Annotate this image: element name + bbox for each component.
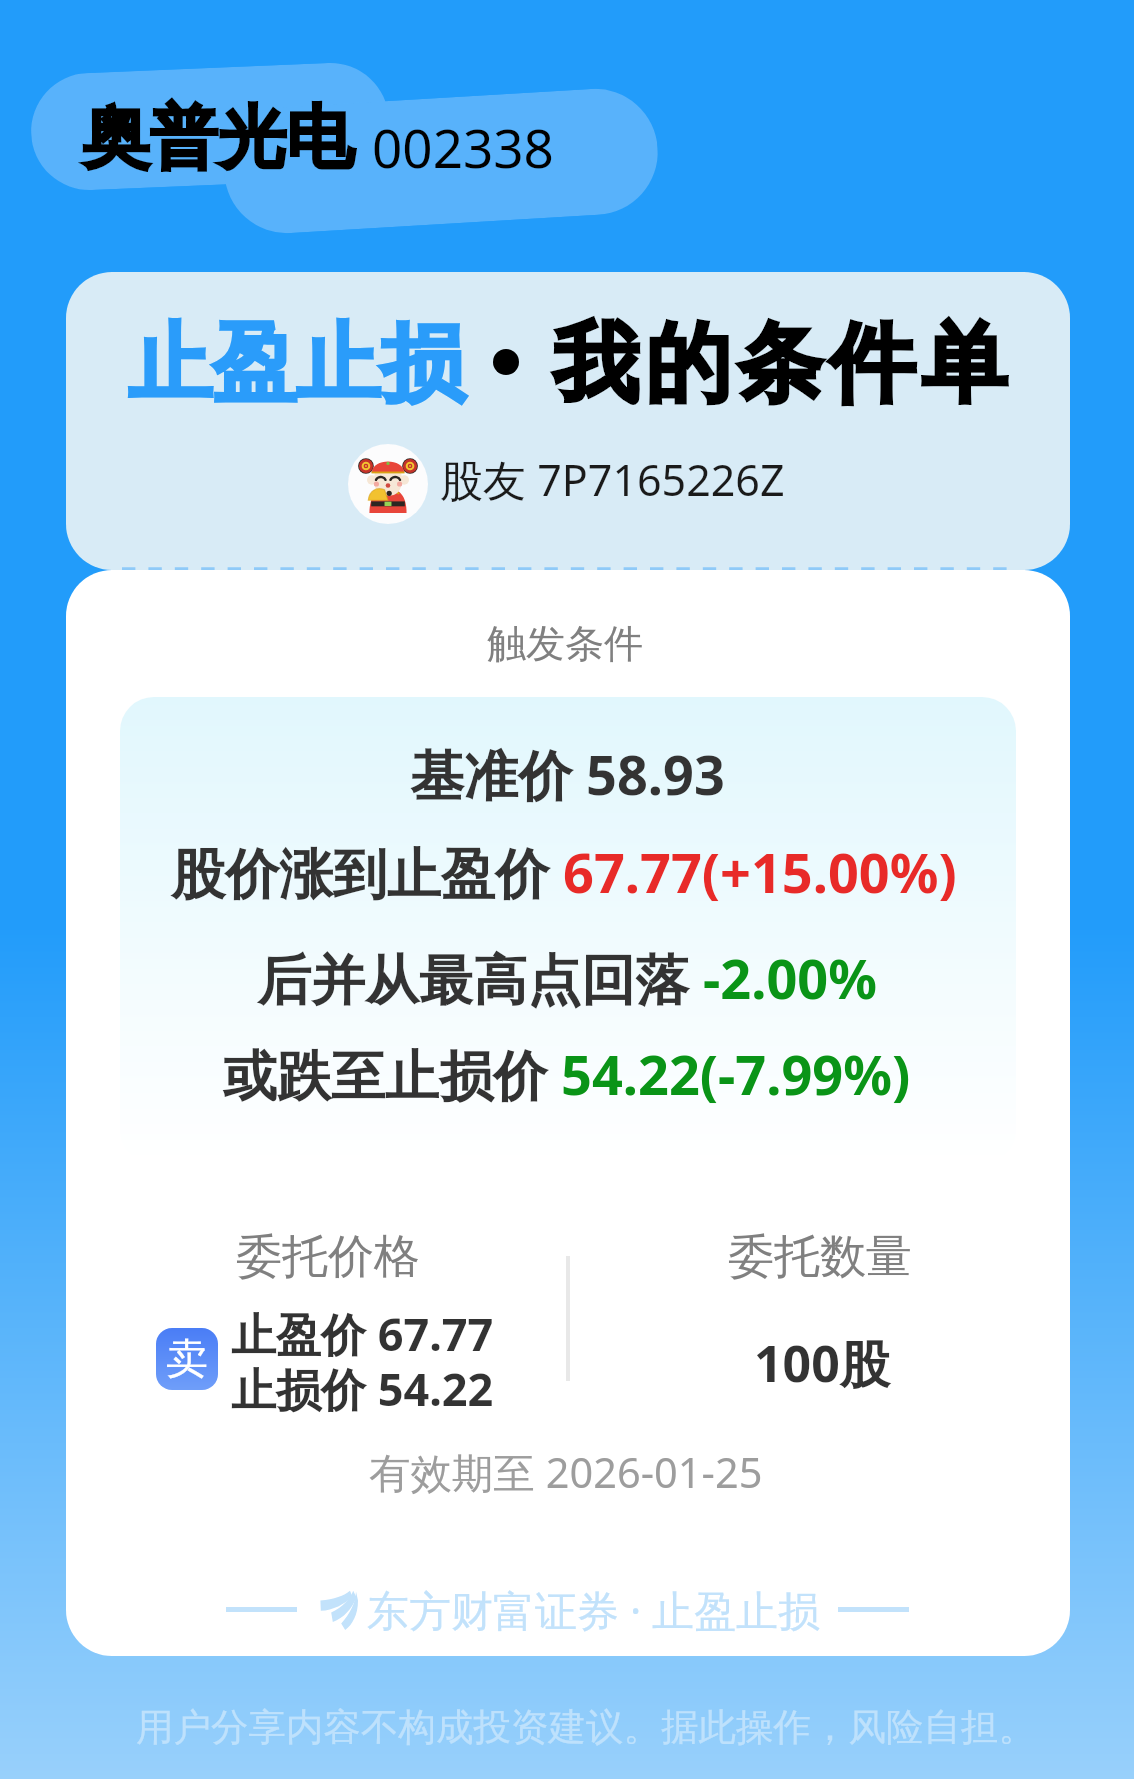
staticText: 100股 bbox=[754, 1329, 890, 1397]
staticText: 002338 bbox=[372, 111, 554, 183]
button[interactable]: 东方财富证券 · 止盈止损 bbox=[0, 1581, 1134, 1638]
staticText: 委托数量 bbox=[728, 1228, 912, 1286]
staticText: 委托价格 bbox=[236, 1228, 420, 1286]
button[interactable]: User avatar bbox=[348, 444, 428, 524]
staticText: 东方财富证券 · 止盈止损 bbox=[367, 1581, 821, 1638]
staticText: 股友 7P7165226Z bbox=[440, 450, 785, 509]
staticText: 止盈价 67.77 bbox=[231, 1303, 494, 1364]
staticText: 止盈止损 bbox=[128, 311, 464, 417]
button[interactable] bbox=[66, 570, 1070, 1656]
staticText: 或跌至止损价 54.22(-7.99%) bbox=[223, 1037, 911, 1111]
staticText: 止损价 54.22 bbox=[231, 1358, 494, 1419]
button[interactable]: 卖 bbox=[156, 1328, 218, 1390]
staticText: 基准价 58.93 bbox=[410, 737, 725, 811]
staticText: 后并从最高点回落 -2.00% bbox=[257, 941, 877, 1015]
staticText: 我的条件单 bbox=[550, 310, 1010, 418]
staticText: 股价涨到止盈价 67.77(+15.00%) bbox=[171, 835, 957, 909]
staticText: 卖 bbox=[166, 1333, 208, 1386]
staticText: 有效期至 2026-01-25 bbox=[369, 1444, 763, 1501]
staticText: 触发条件 bbox=[487, 619, 643, 668]
staticText: 用户分享内容不构成投资建议。据此操作，风险自担。 bbox=[136, 1704, 1036, 1751]
button[interactable] bbox=[66, 272, 1070, 570]
staticText: 奥普光电 bbox=[82, 96, 354, 182]
